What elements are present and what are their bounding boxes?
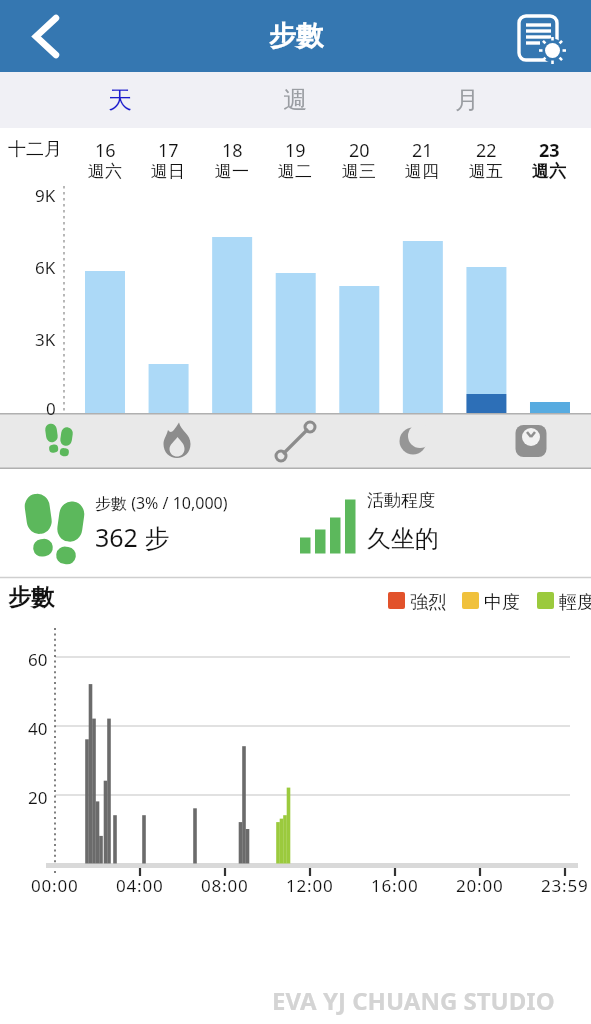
staticText: 0 xyxy=(46,397,56,420)
staticText: 週五 xyxy=(469,161,503,182)
staticText: 23 xyxy=(539,138,560,163)
staticText: 40 xyxy=(28,717,48,740)
staticText: 輕度 xyxy=(559,591,591,614)
staticText: 週 xyxy=(283,85,307,115)
staticText: 週三 xyxy=(342,161,376,182)
staticText: 週六 xyxy=(88,161,122,182)
staticText: 天 xyxy=(108,85,132,115)
staticText: 23:59 xyxy=(541,874,589,897)
button[interactable] xyxy=(0,413,118,469)
staticText: 17 xyxy=(158,138,179,163)
staticText: 月 xyxy=(455,85,479,115)
staticText: 00:00 xyxy=(31,874,79,897)
staticText: 週一 xyxy=(215,161,249,182)
staticText: 21 xyxy=(412,138,433,163)
staticText: 362 步 xyxy=(95,520,170,554)
staticText: 活動程度 xyxy=(367,490,435,511)
staticText: 3K xyxy=(35,328,56,351)
staticText: 9K xyxy=(35,184,56,207)
staticText: 週二 xyxy=(278,161,312,182)
staticText: 20:00 xyxy=(456,874,504,897)
button[interactable] xyxy=(118,413,236,469)
staticText: 19 xyxy=(285,138,306,163)
staticText: 6K xyxy=(35,256,56,279)
staticText: 04:00 xyxy=(116,874,164,897)
staticText: 中度 xyxy=(484,591,520,614)
staticText: 22 xyxy=(476,138,497,163)
staticText: 16 xyxy=(95,138,116,163)
staticText: 步數 xyxy=(269,19,323,53)
button[interactable]: 月 xyxy=(407,72,527,128)
staticText: 週日 xyxy=(151,161,185,182)
staticText: 60 xyxy=(28,648,48,671)
staticText: 20 xyxy=(28,786,48,809)
staticText: 20 xyxy=(349,138,370,163)
button[interactable] xyxy=(236,413,354,469)
button[interactable]: 週 xyxy=(235,72,355,128)
staticText: 步數 (3% / 10,000) xyxy=(95,492,228,514)
staticText: 強烈 xyxy=(410,591,446,614)
staticText: 18 xyxy=(222,138,243,163)
button[interactable] xyxy=(504,4,572,68)
staticText: 步數 xyxy=(8,583,54,612)
button[interactable] xyxy=(354,413,472,469)
button[interactable]: 天 xyxy=(60,72,180,128)
staticText: 久坐的 xyxy=(367,524,439,554)
staticText: EVA YJ CHUANG STUDIO xyxy=(272,984,555,1017)
staticText: 十二月 xyxy=(8,138,62,161)
staticText: 08:00 xyxy=(201,874,249,897)
staticText: 週四 xyxy=(405,161,439,182)
staticText: 週六 xyxy=(532,161,566,182)
button[interactable] xyxy=(472,413,590,469)
staticText: 16:00 xyxy=(371,874,419,897)
staticText: 12:00 xyxy=(286,874,334,897)
button[interactable] xyxy=(8,8,80,64)
